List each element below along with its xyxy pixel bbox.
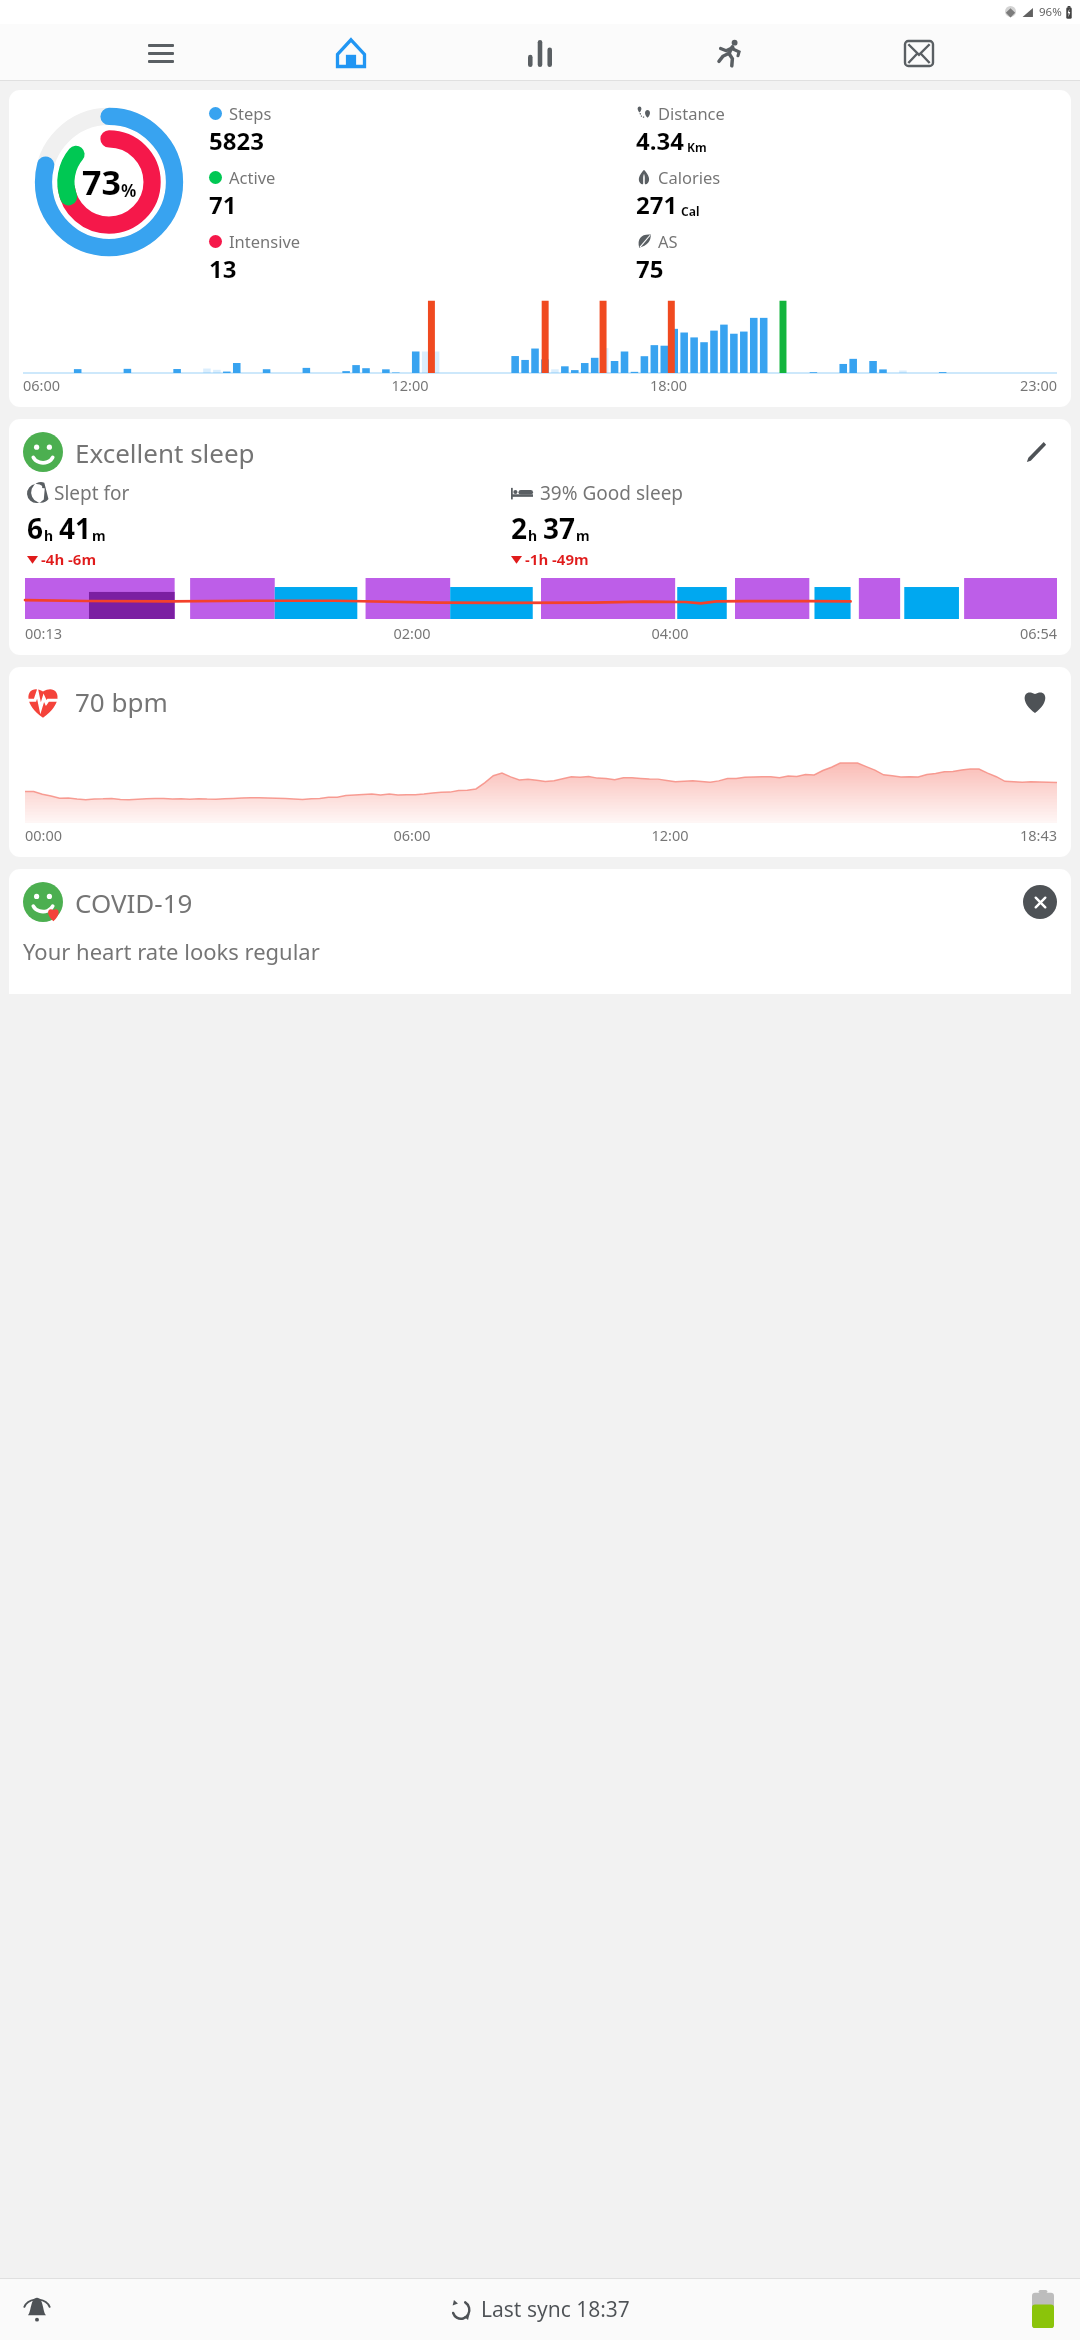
button[interactable]: Excellent sleep <box>9 419 1071 655</box>
staticText: -4h -6m <box>41 549 97 569</box>
staticText: 70 bpm <box>75 684 168 719</box>
staticText: 13 <box>209 252 237 285</box>
button[interactable]: 70 bpm <box>9 667 1071 857</box>
staticText: Cal <box>681 203 700 219</box>
button[interactable]: Last sync 18:37 <box>442 2287 638 2332</box>
staticText: h <box>528 526 538 545</box>
staticText: 75 <box>636 252 664 285</box>
staticText: Intensive <box>229 230 301 252</box>
staticText: 06:00 <box>283 825 541 845</box>
staticText: 02:00 <box>283 623 541 643</box>
staticText: 06:54 <box>799 623 1057 643</box>
button[interactable]: Alarms <box>10 2282 64 2336</box>
staticText: 4.34 <box>636 124 684 157</box>
staticText: % <box>121 179 137 202</box>
staticText: Excellent sleep <box>75 435 255 470</box>
button[interactable]: 73 <box>9 90 1071 407</box>
button[interactable]: Menu <box>133 25 189 81</box>
staticText: 00:00 <box>25 825 283 845</box>
staticText: Active <box>229 166 276 188</box>
staticText: 39% Good sleep <box>540 480 684 506</box>
staticText: 96% <box>1039 4 1062 20</box>
button[interactable]: Workout <box>701 25 757 81</box>
button[interactable]: Statistics <box>512 25 568 81</box>
staticText: Distance <box>658 102 725 124</box>
staticText: m <box>92 526 106 545</box>
staticText: 12:00 <box>281 375 539 395</box>
staticText: h <box>44 526 54 545</box>
button[interactable]: Dismiss <box>1023 885 1057 919</box>
button[interactable]: Heart rate details <box>1013 679 1057 723</box>
button[interactable]: Messages <box>891 25 947 81</box>
staticText: -1h -49m <box>525 549 589 569</box>
staticText: 18:43 <box>799 825 1057 845</box>
staticText: 5823 <box>209 124 264 157</box>
staticText: 73 <box>82 159 121 205</box>
button[interactable]: Home <box>323 25 379 81</box>
staticText: Calories <box>658 166 721 188</box>
staticText: 00:13 <box>25 623 283 643</box>
staticText: Last sync 18:37 <box>481 2295 630 2324</box>
staticText: 6 <box>27 509 44 547</box>
staticText: 23:00 <box>798 375 1057 395</box>
staticText: 41 <box>59 509 92 547</box>
staticText: Your heart rate looks regular <box>23 936 320 966</box>
staticText: 2 <box>511 509 528 547</box>
staticText: m <box>576 526 590 545</box>
staticText: 12:00 <box>541 825 799 845</box>
staticText: 06:00 <box>23 375 281 395</box>
staticText: 04:00 <box>541 623 799 643</box>
staticText: 71 <box>209 188 237 221</box>
staticText: Steps <box>229 102 272 124</box>
staticText: AS <box>658 230 678 252</box>
staticText: Km <box>687 139 707 155</box>
staticText: Slept for <box>54 480 130 506</box>
staticText: 37 <box>543 509 576 547</box>
staticText: COVID-19 <box>75 885 193 920</box>
button[interactable]: COVID-19 <box>9 869 1071 994</box>
button[interactable]: Edit sleep <box>1017 432 1057 472</box>
button[interactable]: Battery <box>1016 2282 1070 2336</box>
staticText: 271 <box>636 188 678 221</box>
staticText: 18:00 <box>539 375 798 395</box>
